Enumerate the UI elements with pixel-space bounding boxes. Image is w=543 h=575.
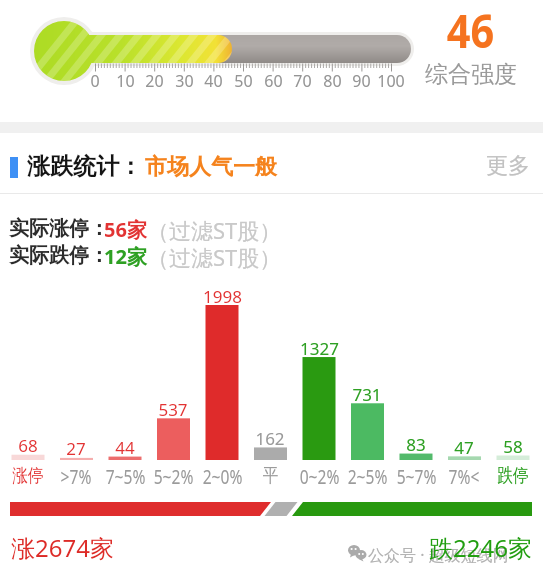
- staticText: 46: [447, 0, 494, 62]
- staticText: 83: [406, 433, 426, 456]
- staticText: 1998: [203, 285, 242, 308]
- staticText: >7%: [60, 464, 92, 490]
- staticText: 实际涨停：: [9, 216, 109, 241]
- staticText: 20: [145, 70, 164, 92]
- staticText: 100: [377, 70, 405, 92]
- staticText: 平: [263, 464, 278, 488]
- button[interactable]: [0, 0, 543, 115]
- staticText: 公众号 · 超级短线网: [368, 544, 509, 566]
- staticText: 0~2%: [299, 464, 340, 490]
- staticText: 5~2%: [153, 464, 194, 490]
- staticText: 90: [352, 70, 371, 92]
- staticText: 731: [352, 383, 382, 406]
- staticText: 12家: [104, 243, 147, 270]
- staticText: 0: [90, 70, 100, 92]
- staticText: 市场人气一般: [145, 153, 277, 181]
- staticText: 2~0%: [202, 464, 243, 490]
- staticText: 涨2674家: [11, 531, 114, 564]
- staticText: 56家: [104, 216, 147, 243]
- staticText: 2~5%: [347, 464, 388, 490]
- staticText: 30: [175, 70, 194, 92]
- staticText: 跌停: [497, 464, 529, 488]
- staticText: 7~5%: [105, 464, 146, 490]
- staticText: 跌2246家: [429, 531, 532, 564]
- staticText: 70: [293, 70, 312, 92]
- staticText: 60: [264, 70, 283, 92]
- staticText: 44: [115, 436, 135, 459]
- staticText: 涨停: [12, 464, 44, 488]
- staticText: 40: [204, 70, 223, 92]
- button[interactable]: 更多: [486, 152, 530, 180]
- staticText: 5~7%: [396, 464, 437, 490]
- staticText: （过滤ST股）: [147, 242, 282, 272]
- staticText: 涨跌统计：: [27, 152, 142, 181]
- staticText: 80: [323, 70, 342, 92]
- staticText: 7%<: [448, 464, 480, 490]
- staticText: 537: [158, 398, 188, 421]
- button[interactable]: [0, 495, 543, 525]
- staticText: 综合强度: [425, 60, 517, 89]
- staticText: 162: [255, 427, 285, 450]
- staticText: 27: [66, 437, 86, 460]
- staticText: 50: [234, 70, 253, 92]
- staticText: 58: [503, 435, 523, 458]
- staticText: （过滤ST股）: [147, 215, 282, 245]
- staticText: 10: [116, 70, 135, 92]
- staticText: 实际跌停：: [9, 243, 109, 268]
- staticText: 47: [454, 436, 474, 459]
- staticText: 68: [18, 434, 38, 457]
- staticText: 1327: [300, 337, 339, 360]
